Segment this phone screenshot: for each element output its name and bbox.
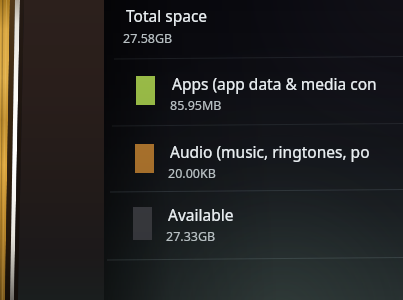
button[interactable]: Available, 27.33GB xyxy=(0,193,403,261)
button[interactable]: Audio, music ringtones podcasts, 20.00KB xyxy=(0,127,403,193)
button[interactable]: Total space 27.58GB xyxy=(0,0,403,60)
button[interactable]: Apps, app data and media content, 85.95M… xyxy=(0,60,403,127)
